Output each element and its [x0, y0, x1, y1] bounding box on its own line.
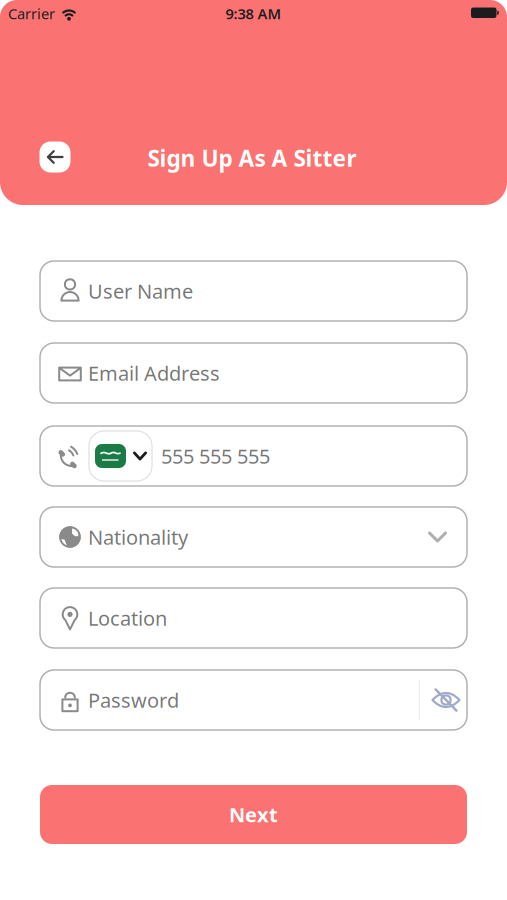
staticText: Location — [88, 605, 167, 631]
staticText: Email Address — [88, 360, 220, 386]
staticText: 555 555 555 — [161, 443, 270, 469]
staticText: Sign Up As A Sitter — [147, 143, 356, 173]
staticText: Nationality — [88, 524, 188, 550]
button[interactable]: Back — [39, 141, 70, 172]
button[interactable]: Country code — [89, 431, 152, 481]
staticText: Next — [229, 801, 278, 828]
staticText: 9:38 AM — [225, 4, 281, 23]
staticText: Password — [88, 687, 179, 713]
button[interactable]: User Name — [40, 261, 467, 321]
button[interactable]: Next — [40, 785, 467, 844]
button[interactable]: Location — [40, 588, 467, 648]
button[interactable]: Password — [40, 670, 467, 730]
staticText: User Name — [88, 278, 193, 304]
button[interactable]: Phone Number — [40, 426, 467, 486]
button[interactable]: Email Address — [40, 343, 467, 403]
button[interactable]: Nationality — [40, 507, 467, 567]
staticText: Carrier — [8, 4, 55, 23]
button[interactable]: Show password — [431, 687, 461, 713]
